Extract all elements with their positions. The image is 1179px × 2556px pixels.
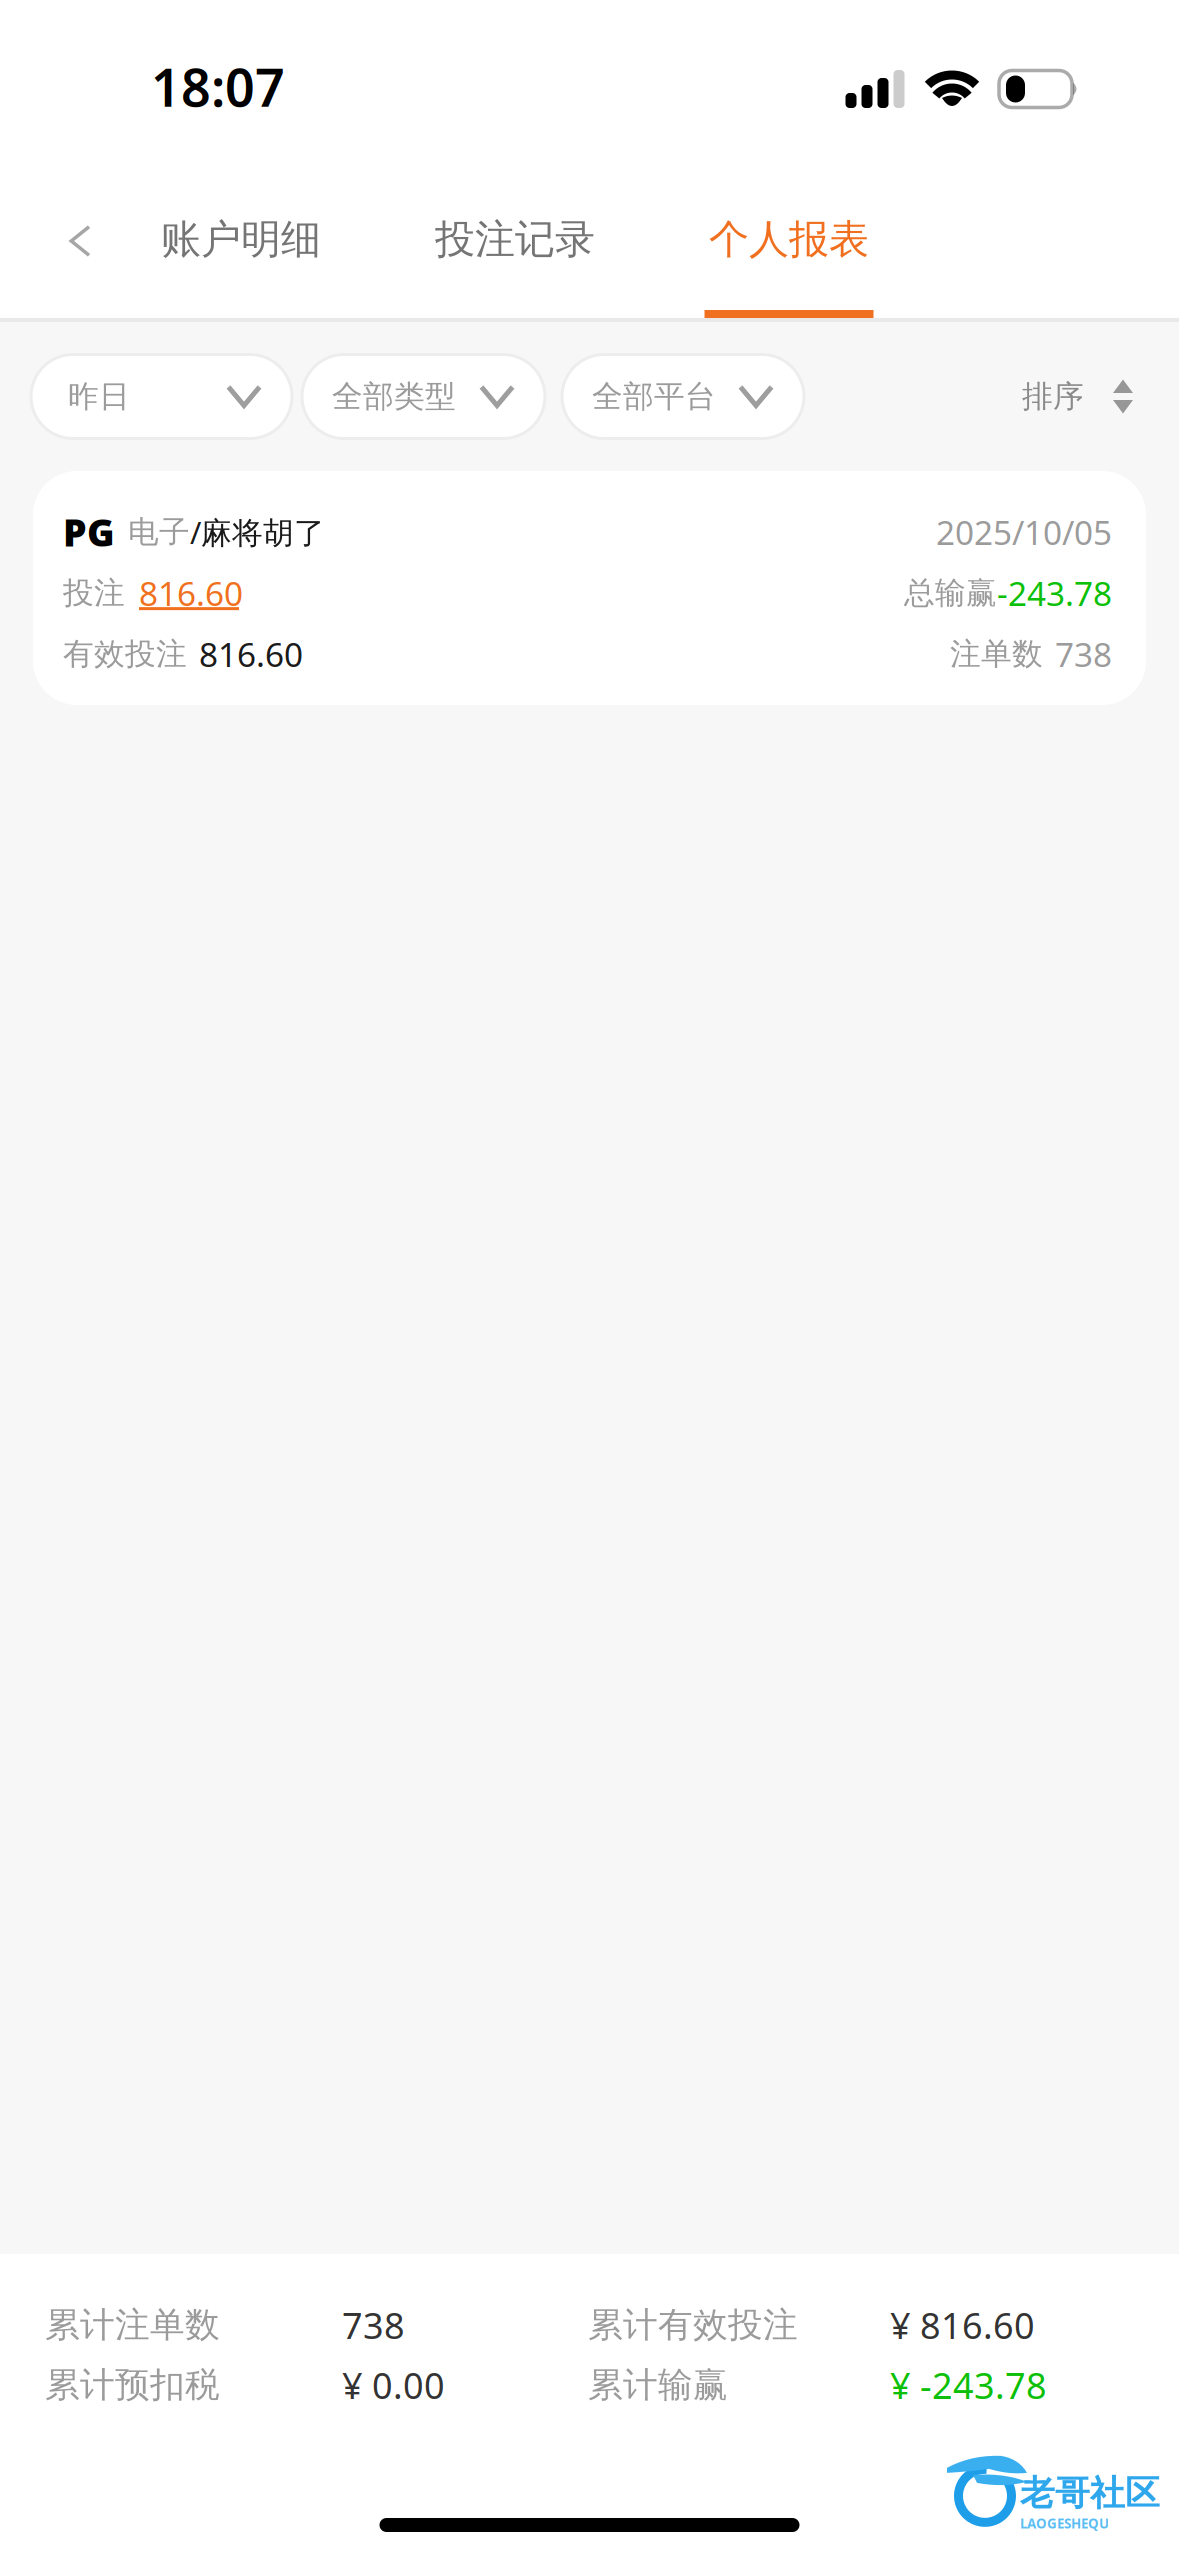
staticText: 有效投注 (63, 635, 187, 673)
staticText: 全部平台 (592, 378, 716, 415)
button[interactable]: 816.60 (139, 571, 243, 615)
staticText: PG (63, 507, 115, 557)
button[interactable]: 全部类型 (302, 354, 545, 438)
button[interactable]: 昨日 (31, 354, 292, 438)
button[interactable]: 账户明细 (141, 170, 341, 318)
staticText: ¥ 0.00 (342, 2361, 445, 2409)
staticText: 总输赢 (904, 574, 997, 612)
staticText: 738 (1055, 632, 1112, 676)
staticText: 投注 (63, 574, 125, 612)
staticText: 电子 (128, 513, 190, 551)
staticText: 816.60 (199, 632, 303, 676)
staticText: 排序 (1022, 378, 1084, 415)
staticText: 账户明细 (161, 215, 321, 264)
staticText: 累计输赢 (588, 2364, 728, 2406)
staticText: LAOGESHEQU (1020, 2514, 1109, 2532)
staticText: ¥ 816.60 (890, 2301, 1035, 2349)
staticText: ¥ -243.78 (890, 2361, 1047, 2409)
staticText: 2025/10/05 (936, 510, 1112, 554)
staticText: 老哥社区 (1020, 2472, 1160, 2514)
button[interactable]: Back (50, 211, 110, 271)
button[interactable]: 个人报表 (689, 170, 889, 318)
staticText: 累计注单数 (45, 2304, 220, 2346)
button[interactable]: 投注记录 (415, 170, 615, 318)
staticText: 738 (342, 2301, 405, 2349)
button[interactable]: 排序 (1022, 356, 1133, 436)
staticText: 全部类型 (332, 378, 456, 415)
staticText: 累计预扣税 (45, 2364, 220, 2406)
staticText: 个人报表 (709, 215, 869, 264)
button[interactable]: 全部平台 (562, 354, 804, 438)
staticText: 816.60 (139, 571, 243, 615)
staticText: 累计有效投注 (588, 2304, 798, 2346)
staticText: -243.78 (997, 571, 1112, 615)
staticText: 投注记录 (435, 215, 595, 264)
staticText: 注单数 (950, 635, 1043, 673)
staticText: 昨日 (68, 378, 130, 415)
staticText: /麻将胡了 (190, 512, 325, 552)
staticText: 18:07 (151, 52, 285, 121)
